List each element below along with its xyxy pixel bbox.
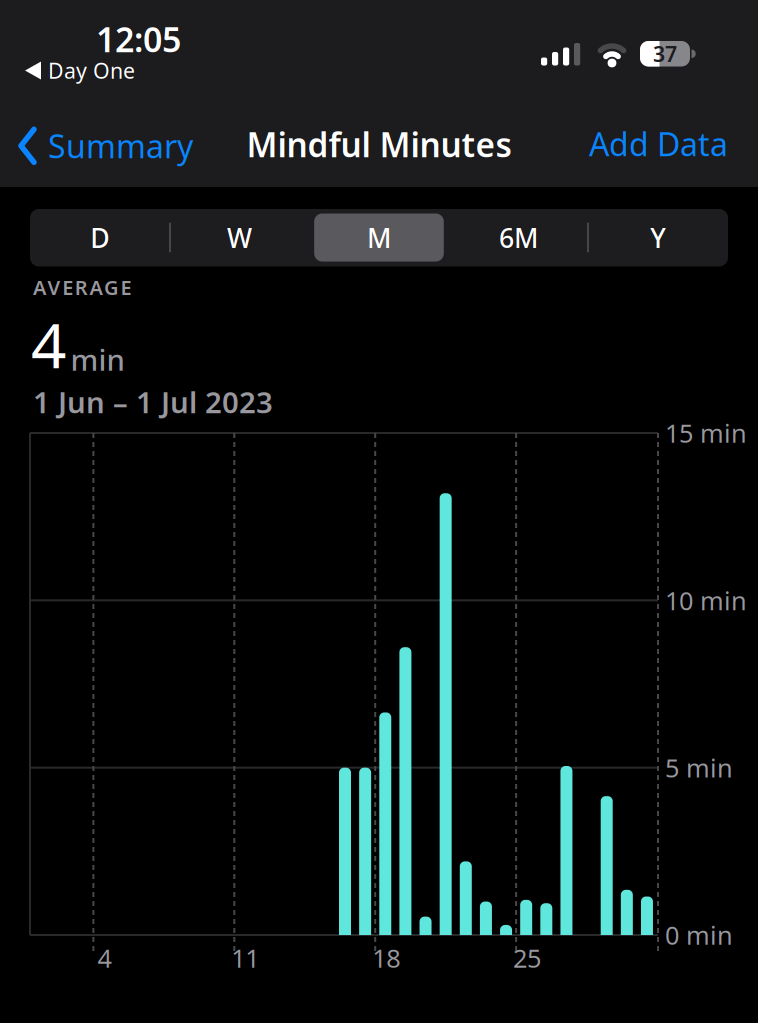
staticText: 11 [231,941,259,975]
staticText: Y [650,220,666,256]
staticText: Add Data [589,122,728,166]
staticText: 10 min [665,583,747,618]
staticText: 15 min [665,416,747,450]
staticText: min [70,339,124,379]
button[interactable]: 6M [449,209,588,266]
button[interactable]: D [30,209,170,266]
staticText: D [90,220,109,256]
button[interactable]: Back to Day One [25,56,135,85]
button[interactable]: W [170,209,309,266]
button[interactable]: Add Data [528,122,728,166]
staticText: 5 min [665,750,733,785]
staticText: 1 Jun – 1 Jul 2023 [33,382,273,422]
button[interactable]: Y [588,209,728,266]
staticText: 25 [513,941,541,975]
staticText: AVERAGE [33,273,132,301]
staticText: 4 [97,941,111,975]
staticText: 12:05 [96,16,181,62]
staticText: 0 min [665,918,733,952]
staticText: M [367,220,391,256]
staticText: 4 [31,302,66,386]
button[interactable]: Back to Summary [18,124,193,168]
staticText: Summary [48,124,193,168]
button[interactable]: M [309,209,449,266]
staticText: Mindful Minutes [246,121,511,167]
staticText: W [227,220,252,256]
staticText: Day One [48,56,135,85]
staticText: 37 [653,39,677,68]
staticText: 6M [499,220,538,256]
staticText: 18 [372,941,400,975]
